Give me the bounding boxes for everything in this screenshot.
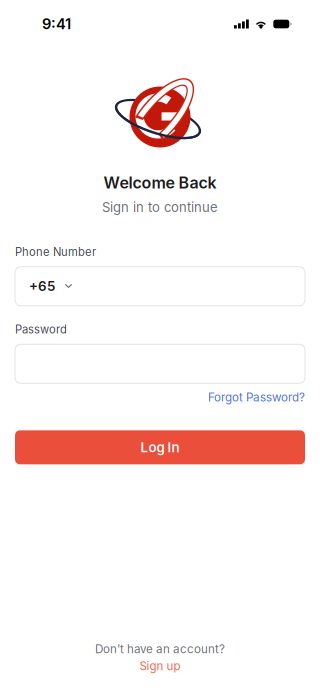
button[interactable]: Forgot Password? (208, 390, 305, 404)
staticText: Welcome Back (103, 173, 216, 192)
button[interactable]: +65 (15, 267, 305, 306)
staticText: Don't have an account? (95, 642, 225, 656)
staticText: Sign up (139, 659, 180, 673)
staticText: 9:41 (42, 15, 71, 33)
staticText: Sign in to continue (102, 199, 218, 215)
staticText: Phone Number (15, 245, 96, 259)
staticText: +65 (29, 278, 55, 294)
staticText: Log In (140, 439, 179, 455)
button[interactable]: Sign up (139, 659, 180, 673)
button[interactable]: Log In (15, 430, 305, 464)
staticText: Password (15, 323, 67, 336)
staticText: Forgot Password? (208, 390, 305, 404)
